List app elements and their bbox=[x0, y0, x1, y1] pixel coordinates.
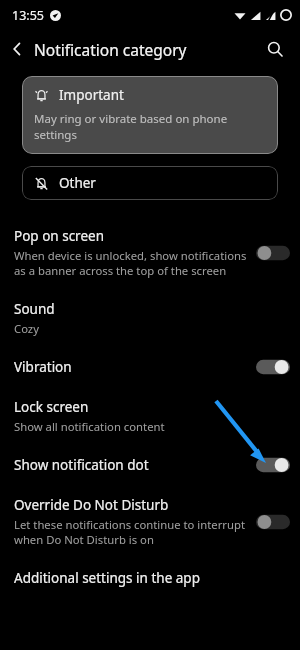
button[interactable]: Toggle on bbox=[256, 456, 290, 474]
staticText: Cozy bbox=[14, 321, 39, 336]
staticText: Lock screen bbox=[14, 398, 89, 416]
button[interactable]: Important bbox=[22, 76, 278, 154]
staticText: Sound bbox=[14, 300, 55, 318]
button[interactable]: Vibration bbox=[0, 347, 300, 387]
staticText: Show all notification content bbox=[14, 419, 165, 434]
staticText: Override Do Not Disturb bbox=[14, 496, 169, 514]
staticText: May ring or vibrate based on phone setti… bbox=[34, 111, 266, 142]
staticText: Show notification dot bbox=[14, 456, 149, 474]
button[interactable]: Other bbox=[22, 166, 278, 200]
button[interactable]: Show notification dot bbox=[0, 445, 300, 485]
staticText: Pop on screen bbox=[14, 227, 104, 245]
staticText: Notification category bbox=[34, 39, 187, 60]
button[interactable]: Lock screen bbox=[0, 387, 300, 445]
staticText: Additional settings in the app bbox=[14, 569, 200, 587]
button[interactable]: Back bbox=[0, 32, 34, 66]
staticText: Important bbox=[59, 86, 124, 104]
button[interactable]: Sound bbox=[0, 289, 300, 347]
button[interactable]: Toggle on bbox=[256, 358, 290, 376]
staticText: When device is unlocked, show notificati… bbox=[14, 248, 248, 278]
staticText: 13:55 bbox=[12, 7, 44, 24]
button[interactable]: Toggle off bbox=[256, 244, 290, 262]
button[interactable]: Search bbox=[258, 32, 292, 66]
staticText: Let these notifications continue to inte… bbox=[14, 517, 248, 547]
button[interactable]: Pop on screen bbox=[0, 216, 300, 289]
staticText: Vibration bbox=[14, 358, 72, 376]
button[interactable]: Toggle off bbox=[256, 513, 290, 531]
button[interactable]: Override Do Not Disturb bbox=[0, 485, 300, 558]
button[interactable]: Additional settings in the app bbox=[0, 558, 300, 598]
staticText: Other bbox=[59, 174, 96, 192]
